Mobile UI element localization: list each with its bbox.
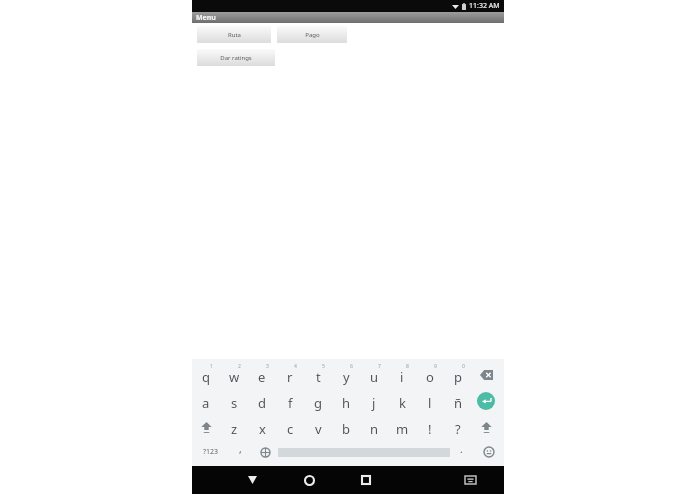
button[interactable]: 5: [304, 362, 332, 388]
staticText: l: [428, 394, 432, 412]
staticText: f: [288, 394, 293, 412]
staticText: q: [202, 368, 210, 386]
button[interactable]: Hide keyboard: [457, 467, 483, 493]
button[interactable]: Change language: [252, 440, 278, 464]
staticText: z: [231, 420, 238, 438]
staticText: t: [316, 368, 321, 386]
staticText: .: [460, 442, 463, 456]
staticText: 8: [406, 363, 409, 370]
button[interactable]: 6: [332, 362, 360, 388]
button[interactable]: 8: [388, 362, 416, 388]
staticText: c: [287, 420, 294, 438]
button[interactable]: g: [304, 388, 332, 414]
button[interactable]: Emoji: [473, 440, 504, 464]
button[interactable]: c: [276, 414, 304, 440]
button[interactable]: d: [248, 388, 276, 414]
button[interactable]: ?123: [192, 440, 229, 464]
button[interactable]: 2: [220, 362, 248, 388]
button[interactable]: m: [388, 414, 416, 440]
button[interactable]: Recent apps: [353, 467, 379, 493]
button[interactable]: n: [360, 414, 388, 440]
staticText: b: [342, 420, 350, 438]
staticText: u: [370, 368, 379, 386]
button[interactable]: a: [192, 388, 220, 414]
staticText: v: [315, 420, 322, 438]
button[interactable]: z: [220, 414, 248, 440]
button[interactable]: j: [360, 388, 388, 414]
staticText: ?123: [203, 447, 219, 457]
staticText: ?: [455, 420, 461, 438]
button[interactable]: f: [276, 388, 304, 414]
button[interactable]: ,: [229, 440, 252, 464]
button[interactable]: 7: [360, 362, 388, 388]
button[interactable]: Shift: [192, 414, 220, 440]
staticText: w: [229, 368, 240, 386]
staticText: Ruta: [228, 31, 241, 39]
button[interactable]: v: [304, 414, 332, 440]
button[interactable]: Enter: [472, 388, 500, 414]
staticText: 9: [434, 363, 437, 370]
staticText: o: [426, 368, 434, 386]
staticText: s: [231, 394, 238, 412]
staticText: r: [287, 368, 293, 386]
button[interactable]: 0: [444, 362, 472, 388]
staticText: d: [258, 394, 266, 412]
staticText: 6: [350, 363, 353, 370]
staticText: Dar ratings: [220, 54, 252, 62]
staticText: Menu: [196, 13, 216, 23]
button[interactable]: l: [416, 388, 444, 414]
button[interactable]: 4: [276, 362, 304, 388]
staticText: y: [343, 368, 350, 386]
button[interactable]: Home: [296, 467, 322, 493]
button[interactable]: Dar ratings: [197, 49, 275, 66]
button[interactable]: 1: [192, 362, 220, 388]
staticText: i: [400, 368, 404, 386]
button[interactable]: 3: [248, 362, 276, 388]
button[interactable]: Back: [239, 467, 265, 493]
button[interactable]: ?: [444, 414, 472, 440]
button[interactable]: !: [416, 414, 444, 440]
staticText: Pago: [305, 31, 320, 39]
button[interactable]: Backspace: [472, 362, 500, 388]
button[interactable]: 9: [416, 362, 444, 388]
staticText: 11:32 AM: [469, 1, 500, 11]
staticText: 0: [462, 363, 465, 370]
staticText: g: [314, 394, 322, 412]
button[interactable]: h: [332, 388, 360, 414]
staticText: x: [259, 420, 266, 438]
staticText: 1: [210, 363, 213, 370]
button[interactable]: k: [388, 388, 416, 414]
staticText: 7: [378, 363, 381, 370]
staticText: !: [428, 420, 432, 438]
staticText: m: [396, 420, 409, 438]
button[interactable]: ñ: [444, 388, 472, 414]
staticText: 4: [294, 363, 297, 370]
staticText: ñ: [454, 394, 463, 412]
staticText: n: [370, 420, 379, 438]
staticText: ,: [239, 442, 242, 456]
staticText: p: [454, 368, 462, 386]
button[interactable]: s: [220, 388, 248, 414]
staticText: j: [372, 394, 376, 412]
button[interactable]: Shift: [472, 414, 500, 440]
button[interactable]: Ruta: [197, 26, 271, 43]
button[interactable]: .: [450, 440, 473, 464]
staticText: 2: [238, 363, 241, 370]
button[interactable]: Pago: [277, 26, 347, 43]
staticText: 3: [266, 363, 269, 370]
button[interactable]: x: [248, 414, 276, 440]
button[interactable]: b: [332, 414, 360, 440]
staticText: e: [258, 368, 266, 386]
staticText: a: [202, 394, 210, 412]
staticText: h: [342, 394, 351, 412]
staticText: k: [399, 394, 406, 412]
staticText: 5: [322, 363, 325, 370]
